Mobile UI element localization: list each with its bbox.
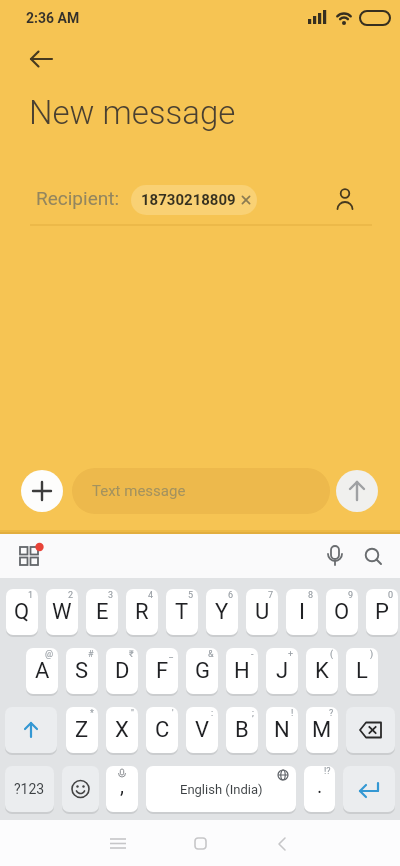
staticText: 9 xyxy=(348,590,354,601)
button[interactable] xyxy=(5,707,57,753)
staticText: , xyxy=(120,774,124,797)
button[interactable]: F xyxy=(146,648,178,694)
staticText: 0 xyxy=(388,590,394,601)
staticText: " xyxy=(131,708,134,719)
button[interactable]: C xyxy=(146,707,178,753)
staticText: @ xyxy=(45,649,54,660)
staticText: ₹ xyxy=(129,649,134,660)
button[interactable] xyxy=(94,820,142,866)
staticText: C xyxy=(155,717,170,743)
button[interactable]: 18730218809 xyxy=(131,185,257,215)
button[interactable]: U xyxy=(246,589,278,635)
staticText: ? xyxy=(329,708,334,719)
staticText: R xyxy=(135,599,149,625)
staticText: T xyxy=(175,599,189,625)
button[interactable]: Text message xyxy=(72,468,330,514)
staticText: New message xyxy=(29,93,236,132)
staticText: J xyxy=(276,658,289,684)
staticText: ! xyxy=(291,708,294,719)
button[interactable]: ?123 xyxy=(5,766,54,812)
staticText: U xyxy=(255,599,270,625)
staticText: M xyxy=(312,717,332,743)
button[interactable]: E xyxy=(86,589,118,635)
staticText: English (India) xyxy=(180,782,263,797)
staticText: G xyxy=(195,658,210,684)
staticText: I xyxy=(299,599,305,625)
staticText: ' xyxy=(172,708,174,719)
staticText: X xyxy=(115,717,129,743)
button[interactable]: . xyxy=(304,766,335,812)
button[interactable] xyxy=(12,538,48,574)
button[interactable]: G xyxy=(186,648,218,694)
staticText: 3 xyxy=(108,590,114,601)
staticText: # xyxy=(88,649,94,660)
button[interactable]: English (India) xyxy=(146,766,296,812)
button[interactable]: D xyxy=(106,648,138,694)
staticText: !? xyxy=(324,766,331,777)
staticText: B xyxy=(235,717,249,743)
staticText: : xyxy=(211,708,214,719)
button[interactable]: , xyxy=(106,766,138,812)
button[interactable]: V xyxy=(186,707,218,753)
button[interactable] xyxy=(176,820,224,866)
staticText: 18730218809 xyxy=(141,191,236,209)
button[interactable]: O xyxy=(326,589,358,635)
button[interactable] xyxy=(356,540,388,572)
staticText: D xyxy=(115,658,130,684)
button[interactable] xyxy=(62,766,99,812)
staticText: ; xyxy=(252,708,254,719)
staticText: 5 xyxy=(188,590,194,601)
staticText: . xyxy=(317,774,323,797)
button[interactable]: T xyxy=(166,589,198,635)
button[interactable] xyxy=(346,707,395,753)
button[interactable] xyxy=(336,470,378,512)
staticText: N xyxy=(274,717,290,743)
staticText: _ xyxy=(169,649,174,660)
staticText: P xyxy=(375,599,389,625)
button[interactable] xyxy=(21,470,63,512)
staticText: 2 xyxy=(68,590,74,601)
staticText: Text message xyxy=(92,482,186,500)
staticText: * xyxy=(90,708,94,719)
button[interactable]: I xyxy=(286,589,318,635)
button[interactable]: K xyxy=(306,648,338,694)
button[interactable] xyxy=(320,540,350,570)
staticText: 1 xyxy=(28,590,34,601)
button[interactable]: S xyxy=(66,648,98,694)
button[interactable]: A xyxy=(26,648,58,694)
staticText: K xyxy=(315,658,329,684)
staticText: E xyxy=(96,599,109,625)
button[interactable]: J xyxy=(266,648,298,694)
staticText: 6 xyxy=(228,590,234,601)
button[interactable]: M xyxy=(306,707,338,753)
staticText: 2:36 AM xyxy=(26,10,80,26)
staticText: + xyxy=(288,649,294,660)
button[interactable]: Q xyxy=(6,589,38,635)
staticText: F xyxy=(156,658,169,684)
button[interactable] xyxy=(343,766,395,812)
staticText: 7 xyxy=(268,590,274,601)
button[interactable]: Z xyxy=(66,707,98,753)
button[interactable]: B xyxy=(226,707,258,753)
staticText: W xyxy=(52,599,72,625)
button[interactable] xyxy=(328,182,362,216)
button[interactable]: H xyxy=(226,648,258,694)
button[interactable] xyxy=(258,820,306,866)
button[interactable] xyxy=(24,42,60,78)
staticText: Recipient: xyxy=(36,187,120,209)
button[interactable]: W xyxy=(46,589,78,635)
staticText: V xyxy=(195,717,210,743)
button[interactable]: N xyxy=(266,707,298,753)
button[interactable]: Y xyxy=(206,589,238,635)
button[interactable]: X xyxy=(106,707,138,753)
staticText: O xyxy=(334,599,350,625)
staticText: L xyxy=(356,658,368,684)
button[interactable]: P xyxy=(366,589,398,635)
staticText: & xyxy=(208,649,214,660)
staticText: H xyxy=(234,658,250,684)
staticText: A xyxy=(35,658,50,684)
staticText: S xyxy=(75,658,89,684)
staticText: Y xyxy=(215,599,229,625)
button[interactable]: L xyxy=(346,648,378,694)
button[interactable]: R xyxy=(126,589,158,635)
